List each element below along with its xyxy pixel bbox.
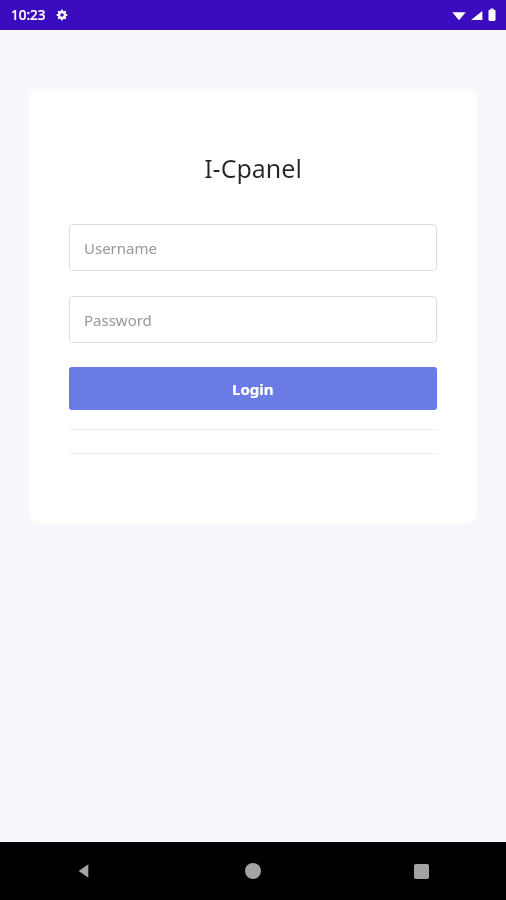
button[interactable]: Username xyxy=(69,224,437,271)
staticText: I-Cpanel xyxy=(69,151,437,185)
button[interactable]: Home xyxy=(168,842,337,900)
staticText: Password xyxy=(84,310,152,330)
button[interactable]: Login xyxy=(69,367,437,410)
staticText: Username xyxy=(84,238,157,258)
button[interactable]: Password xyxy=(69,296,437,343)
button[interactable]: Back xyxy=(0,842,168,900)
staticText: 10:23 xyxy=(11,6,46,24)
button[interactable]: Recent apps xyxy=(337,842,506,900)
staticText: Login xyxy=(232,379,274,399)
